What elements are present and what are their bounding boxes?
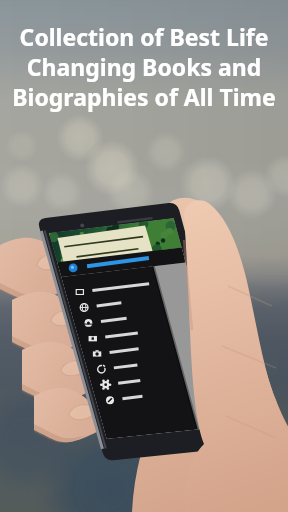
staticText: Collection of Best Life Changing Books a… [12,21,276,112]
